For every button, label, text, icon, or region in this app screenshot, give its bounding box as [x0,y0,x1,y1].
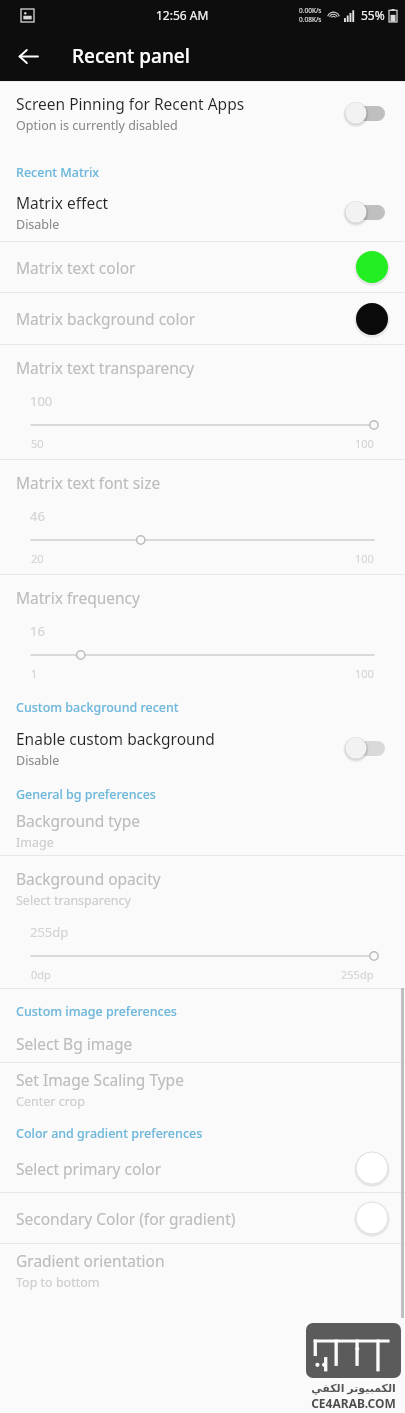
button[interactable]: Back [8,36,48,76]
button[interactable]: Screen Pinning for Recent Apps [0,82,405,144]
button[interactable]: Matrix text color [0,242,405,292]
staticText: 0dp [31,967,51,982]
staticText: Enable custom background [16,728,215,749]
button[interactable]: Secondary Color (for gradient) [0,1193,405,1243]
staticText: 0.00K/s [299,6,322,15]
staticText: Center crop [16,1093,85,1110]
button[interactable]: Gradient orientation [0,1244,405,1296]
button[interactable]: Matrix text transparency [0,345,405,459]
staticText: 100 [355,436,374,451]
staticText: 50 [31,436,44,451]
button[interactable]: Select Bg image [0,1024,405,1062]
button[interactable]: Select primary color [0,1144,405,1192]
staticText: Recent Matrix [16,164,100,181]
staticText: Disable [16,752,60,769]
staticText: Matrix effect [16,192,109,213]
staticText: Background opacity [16,868,161,889]
staticText: Custom background recent [16,699,179,716]
staticText: Matrix text color [16,257,355,278]
staticText: Screen Pinning for Recent Apps [16,93,245,114]
staticText: Custom image preferences [16,1003,177,1020]
button[interactable]: Matrix frequency [0,575,405,683]
staticText: Matrix frequency [16,587,140,608]
staticText: Matrix background color [16,308,355,329]
staticText: 55% [361,7,385,23]
staticText: Matrix text transparency [16,357,195,378]
staticText: 0.08K/s [299,15,322,24]
button[interactable]: Matrix text font size [0,460,405,574]
staticText: Recent panel [72,43,190,69]
staticText: Image [16,834,54,851]
staticText: الكمبيوتر الكفي [311,1380,396,1395]
button[interactable]: Matrix background color [0,293,405,344]
staticText: 20 [31,551,44,566]
button[interactable]: Set Image Scaling Type [0,1063,405,1115]
staticText: Select transparency [16,892,131,909]
staticText: 46 [30,507,45,525]
staticText: 100 [355,551,374,566]
button[interactable]: Background opacity [0,856,405,988]
staticText: Matrix text font size [16,472,161,493]
staticText: Top to bottom [16,1274,100,1291]
staticText: 255dp [30,923,69,941]
staticText: Select primary color [16,1158,355,1179]
staticText: Set Image Scaling Type [16,1069,184,1090]
button[interactable]: Matrix effect [0,183,405,241]
staticText: 255dp [341,967,374,982]
staticText: 12:56 AM [156,7,209,23]
staticText: 100 [30,392,53,410]
staticText: 100 [355,666,374,681]
staticText: General bg preferences [16,786,156,803]
staticText: Color and gradient preferences [16,1125,203,1142]
button[interactable]: Background type [0,805,405,855]
staticText: Option is currently disabled [16,117,178,134]
staticText: Secondary Color (for gradient) [16,1208,355,1229]
staticText: CE4ARAB.COM [311,1395,396,1411]
staticText: Gradient orientation [16,1250,165,1271]
staticText: 16 [30,622,45,640]
button[interactable]: Enable custom background [0,722,405,774]
staticText: Disable [16,216,60,233]
staticText: 1 [31,666,38,681]
staticText: Select Bg image [16,1033,133,1054]
staticText: Background type [16,810,140,831]
